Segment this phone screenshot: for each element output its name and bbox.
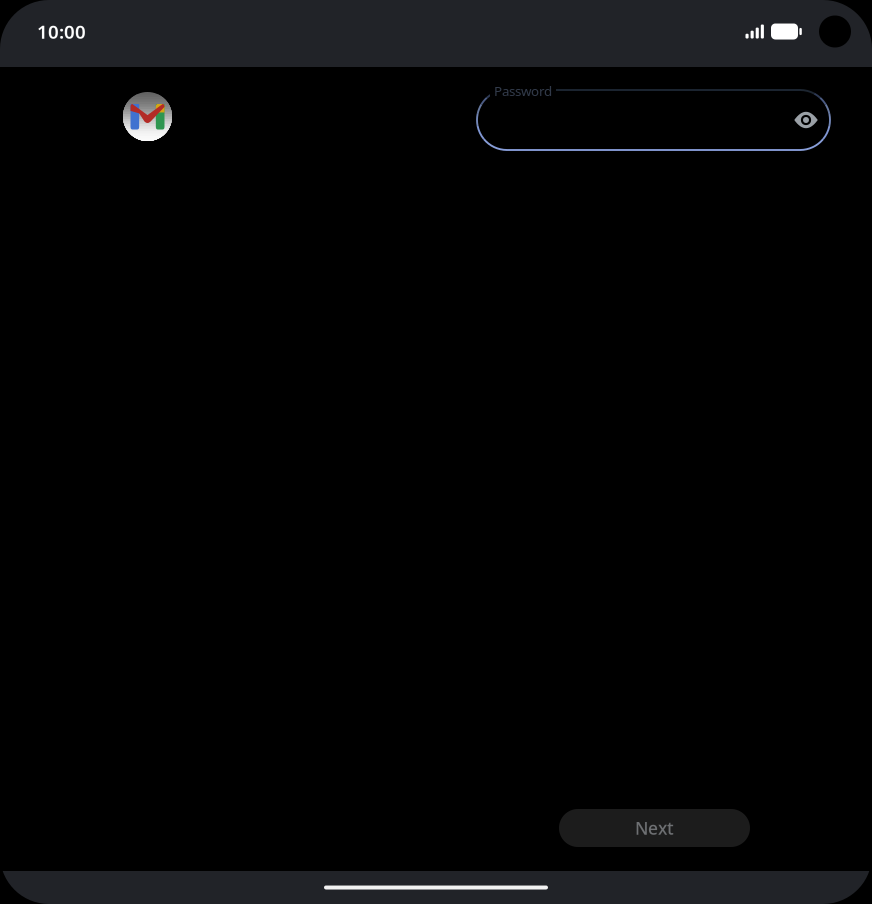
staticText: Password xyxy=(494,82,552,100)
staticText: 10:00 xyxy=(37,19,86,44)
button[interactable]: Password xyxy=(477,90,830,150)
staticText: Next xyxy=(635,816,674,839)
button[interactable]: Show password xyxy=(787,101,825,139)
button[interactable]: Next xyxy=(559,809,750,847)
button[interactable]: Gmail account xyxy=(123,92,172,141)
